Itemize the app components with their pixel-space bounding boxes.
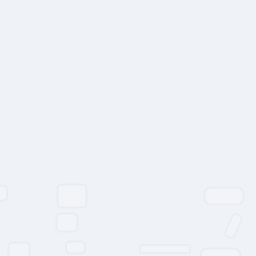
button[interactable]: Progress bbox=[140, 245, 190, 253]
button[interactable]: Queue bbox=[56, 213, 77, 231]
button[interactable]: Previous bbox=[0, 185, 7, 200]
button[interactable]: Albums bbox=[66, 241, 85, 253]
button[interactable]: Controls bbox=[200, 248, 240, 256]
button[interactable]: Compose bbox=[228, 213, 238, 238]
button[interactable]: Library bbox=[8, 242, 29, 256]
